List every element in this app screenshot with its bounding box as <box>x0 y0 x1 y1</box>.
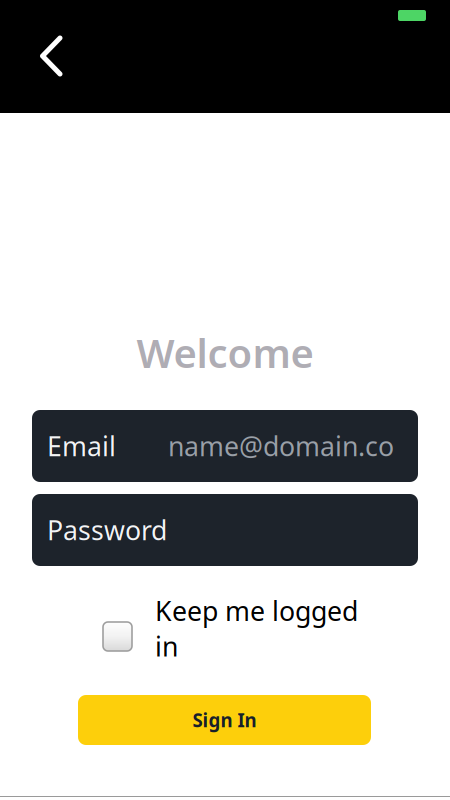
button[interactable]: Keep me logged in <box>103 593 365 665</box>
staticText: name@domain.co <box>168 428 394 464</box>
staticText: Keep me logged in <box>155 593 358 664</box>
staticText: Welcome <box>136 326 313 379</box>
button[interactable]: Back <box>22 27 80 85</box>
staticText: Sign In <box>192 708 256 732</box>
button[interactable]: Sign In <box>78 695 371 745</box>
staticText: Email <box>47 428 116 464</box>
staticText: Password <box>47 512 167 548</box>
